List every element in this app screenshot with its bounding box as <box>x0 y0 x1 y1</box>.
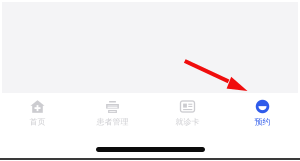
staticText: 首页 <box>29 117 45 127</box>
button[interactable]: 就诊卡 <box>150 93 225 161</box>
button[interactable]: 预约 <box>225 93 300 161</box>
staticText: 患者管理 <box>96 117 128 127</box>
button[interactable]: 患者管理 <box>75 93 150 161</box>
button[interactable]: 首页 <box>0 93 75 161</box>
staticText: 就诊卡 <box>175 117 199 127</box>
staticText: 预约 <box>254 117 270 127</box>
